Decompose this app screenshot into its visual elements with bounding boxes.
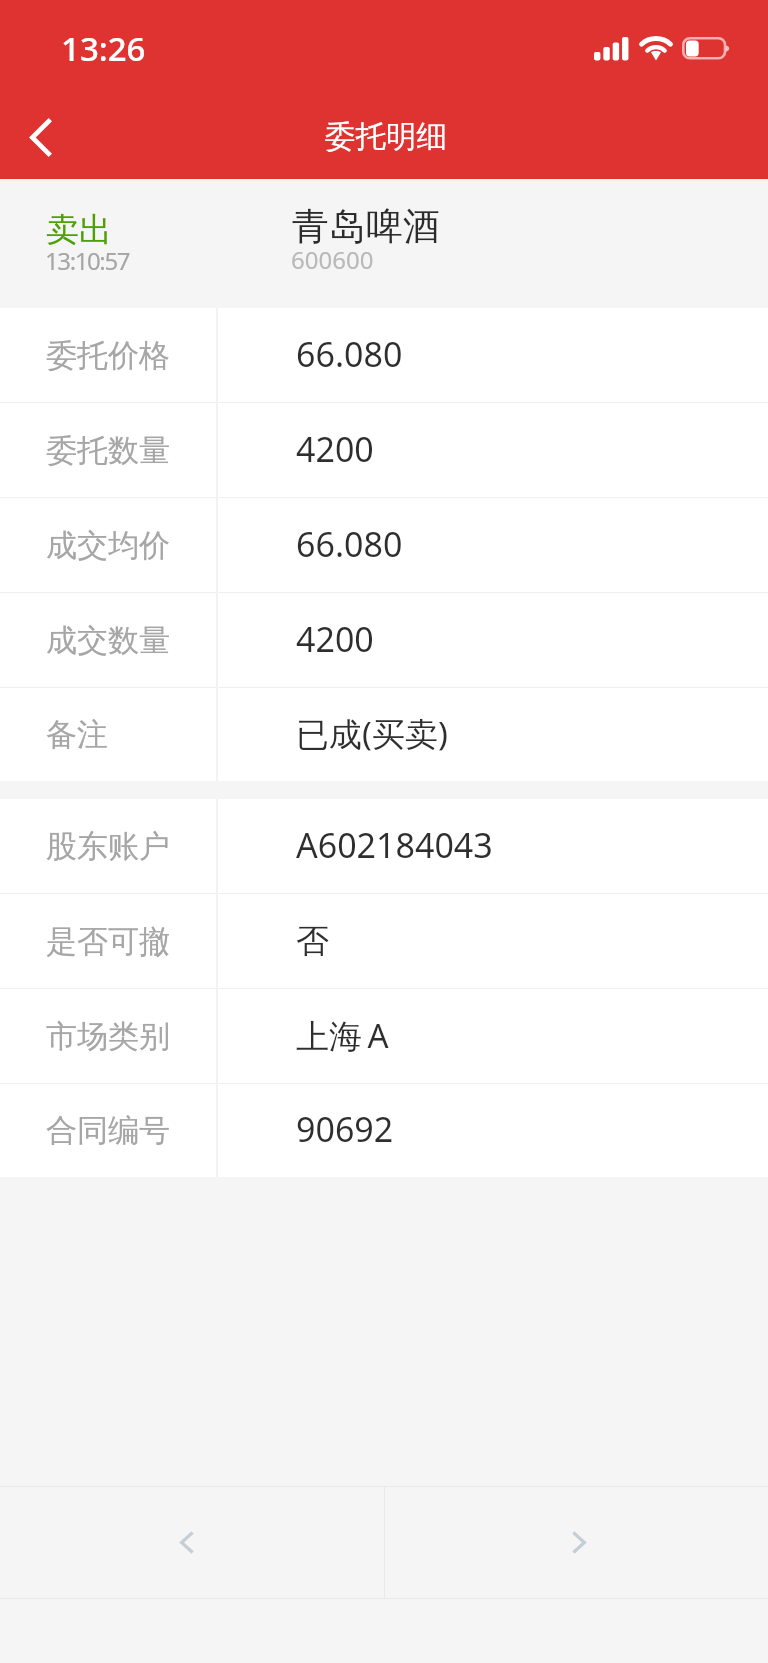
button[interactable]: 成交均价 (0, 498, 768, 593)
button[interactable]: 合同编号 (0, 1084, 768, 1177)
staticText: 是否可撤 (46, 922, 170, 961)
staticText: 66.080 (296, 331, 403, 377)
staticText: A602184043 (296, 822, 493, 868)
button[interactable]: 委托数量 (0, 403, 768, 498)
staticText: 备注 (46, 715, 108, 754)
staticText: 13:10:57 (45, 244, 130, 277)
button[interactable]: 市场类别 (0, 989, 768, 1084)
staticText: 委托价格 (46, 336, 170, 375)
staticText: 90692 (296, 1106, 394, 1152)
staticText: 委托明细 (325, 118, 447, 156)
button[interactable]: 是否可撤 (0, 894, 768, 989)
staticText: 卖出 (46, 209, 112, 251)
staticText: 66.080 (296, 521, 403, 567)
button[interactable]: 股东账户 (0, 799, 768, 894)
staticText: 4200 (296, 426, 374, 472)
staticText: 青岛啤酒 (292, 203, 440, 250)
button[interactable]: 成交数量 (0, 593, 768, 688)
button[interactable]: Back (0, 91, 90, 179)
staticText: 市场类别 (46, 1017, 170, 1056)
staticText: 委托数量 (46, 431, 170, 470)
button[interactable]: 委托价格 (0, 308, 768, 403)
button[interactable]: 备注 (0, 688, 768, 781)
staticText: 600600 (291, 243, 374, 276)
staticText: 13:26 (61, 26, 146, 71)
staticText: 合同编号 (46, 1111, 170, 1150)
staticText: 成交均价 (46, 526, 170, 565)
staticText: 否 (296, 920, 329, 962)
staticText: 上海 A (296, 1013, 389, 1058)
staticText: 4200 (296, 616, 374, 662)
staticText: 股东账户 (46, 827, 170, 866)
staticText: 成交数量 (46, 621, 170, 660)
staticText: 已成(买卖) (296, 711, 448, 756)
